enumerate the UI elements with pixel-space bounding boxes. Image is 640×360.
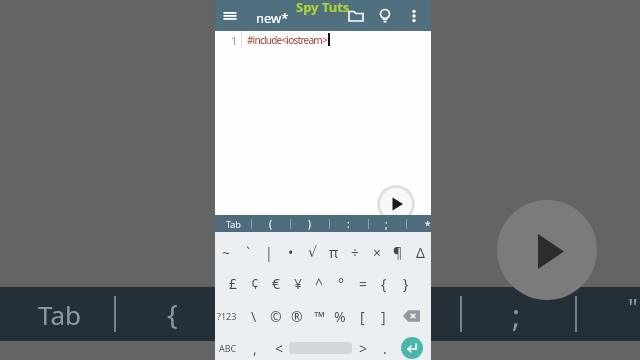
staticText: ,	[253, 339, 257, 358]
button[interactable]: =	[352, 272, 374, 294]
button[interactable]: >	[352, 337, 374, 359]
staticText: .	[383, 339, 387, 358]
button[interactable]: ¥	[287, 272, 309, 294]
staticText: ~	[222, 243, 231, 262]
staticText: •	[288, 243, 294, 262]
staticText: ]	[381, 307, 386, 326]
staticText: <	[275, 339, 284, 358]
button[interactable]: (	[259, 213, 281, 235]
staticText: \	[251, 307, 257, 326]
button[interactable]	[221, 7, 239, 25]
staticText: {	[167, 295, 178, 333]
button[interactable]: [	[351, 305, 373, 327]
staticText: ÷	[351, 243, 360, 262]
staticText: ¥	[294, 274, 303, 293]
staticText: :	[347, 217, 350, 231]
button[interactable]	[401, 337, 423, 359]
staticText: }	[403, 274, 409, 293]
button[interactable]: |	[258, 241, 280, 263]
button[interactable]: %	[329, 305, 351, 327]
button[interactable]: ]	[372, 305, 394, 327]
staticText: ¢	[251, 274, 260, 293]
button[interactable]: .	[374, 337, 396, 359]
staticText: ×	[373, 243, 382, 262]
button[interactable]: ;	[375, 213, 397, 235]
staticText: =	[359, 274, 368, 293]
button[interactable]	[407, 7, 421, 25]
button[interactable]: Δ	[409, 241, 431, 263]
staticText: √	[308, 244, 317, 260]
staticText: (	[269, 217, 272, 231]
button[interactable]: ,	[244, 337, 266, 359]
button[interactable]: <	[268, 337, 290, 359]
staticText: ?123	[217, 310, 237, 322]
staticText: Δ	[416, 243, 425, 262]
staticText: #include<iostream>	[247, 33, 327, 47]
staticText: Spy Tuts	[296, 0, 350, 16]
staticText: ;	[512, 295, 521, 336]
staticText: "	[628, 290, 638, 323]
button[interactable]: ~	[215, 241, 237, 263]
staticText: °	[338, 274, 344, 293]
staticText: ®	[291, 307, 303, 326]
button[interactable]: €	[265, 272, 287, 294]
button[interactable]: }	[395, 272, 417, 294]
staticText: ABC	[219, 342, 237, 354]
button[interactable]: `	[237, 241, 259, 263]
staticText: Tab	[38, 297, 81, 332]
button[interactable]: ?123	[216, 305, 238, 327]
staticText: )	[308, 217, 311, 231]
button[interactable]: ^	[308, 272, 330, 294]
button[interactable]: π	[323, 241, 345, 263]
button[interactable]	[376, 7, 394, 25]
button[interactable]: ABC	[217, 337, 239, 359]
button[interactable]: ×	[366, 241, 388, 263]
button[interactable]: )	[298, 213, 320, 235]
staticText: {	[381, 274, 387, 293]
button[interactable]	[380, 188, 412, 220]
button[interactable]: √	[301, 241, 323, 263]
staticText: ©	[270, 307, 282, 326]
button[interactable]: ¢	[244, 272, 266, 294]
staticText: Tab	[226, 218, 241, 230]
button[interactable]: \	[243, 305, 265, 327]
button[interactable]	[347, 7, 365, 25]
staticText: π	[329, 243, 339, 262]
staticText: >	[359, 339, 368, 358]
button[interactable]: {	[373, 272, 395, 294]
button[interactable]: Tab	[222, 213, 244, 235]
staticText: `	[246, 243, 250, 262]
staticText: €	[272, 274, 281, 293]
staticText: new*	[256, 9, 289, 27]
button[interactable]: £	[222, 272, 244, 294]
staticText: 1	[231, 33, 238, 48]
button[interactable]	[401, 306, 423, 326]
staticText: ¶	[393, 243, 403, 262]
staticText: [	[360, 307, 365, 326]
staticText: ^	[315, 274, 324, 293]
button[interactable]: •	[280, 241, 302, 263]
staticText: ;	[385, 217, 388, 231]
button[interactable]: °	[330, 272, 352, 294]
staticText: %	[334, 307, 346, 326]
button[interactable]: ®	[286, 305, 308, 327]
staticText: £	[229, 274, 238, 293]
button[interactable]: ™	[308, 305, 330, 327]
staticText: *	[425, 218, 431, 232]
button[interactable]: ÷	[344, 241, 366, 263]
staticText: ™	[314, 307, 325, 326]
button[interactable]: :	[337, 213, 359, 235]
button[interactable]: ©	[265, 305, 287, 327]
staticText: |	[265, 243, 273, 262]
button[interactable]: ¶	[387, 241, 409, 263]
